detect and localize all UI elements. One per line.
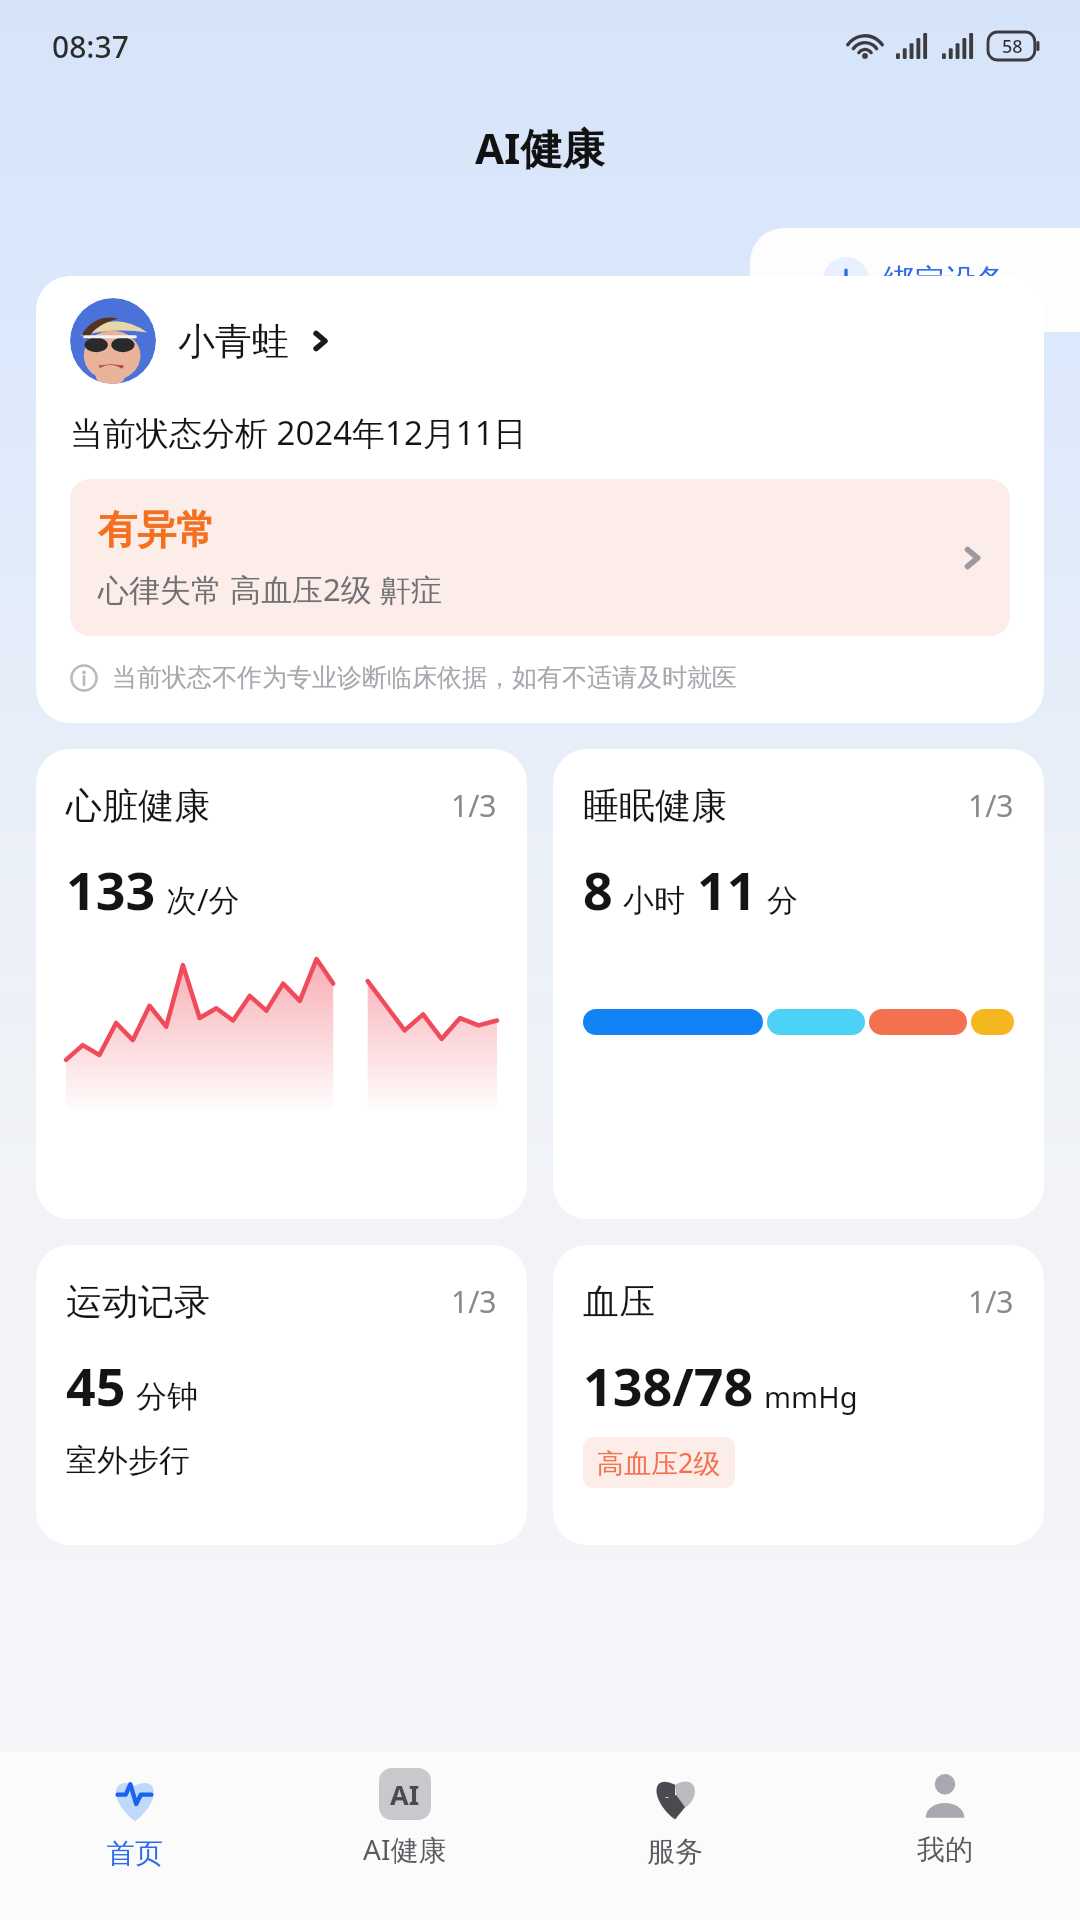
- staticText: 小青蛙: [178, 318, 289, 365]
- staticText: 小时: [623, 881, 685, 920]
- button[interactable]: 心脏健康: [36, 749, 527, 1219]
- button[interactable]: 有异常: [70, 479, 1010, 636]
- staticText: 58: [1002, 34, 1023, 59]
- staticText: 我的: [917, 1832, 973, 1867]
- button[interactable]: 血压: [553, 1245, 1044, 1545]
- staticText: 室外步行: [66, 1441, 190, 1480]
- staticText: 1/3: [968, 1281, 1014, 1322]
- staticText: 8: [583, 854, 613, 925]
- staticText: 心脏健康: [66, 783, 451, 828]
- button[interactable]: 小青蛙: [70, 298, 329, 384]
- staticText: 138/78: [583, 1350, 754, 1421]
- staticText: 1/3: [968, 785, 1014, 826]
- staticText: 08:37: [52, 26, 129, 67]
- staticText: 次/分: [166, 878, 240, 920]
- staticText: 当前状态分析 2024年12月11日: [70, 410, 527, 455]
- staticText: 133: [66, 854, 156, 925]
- staticText: 心律失常 高血压2级 鼾症: [98, 568, 442, 610]
- button[interactable]: 服务: [540, 1752, 810, 1920]
- staticText: 1/3: [451, 785, 497, 826]
- staticText: 血压: [583, 1279, 968, 1324]
- staticText: AI: [390, 1776, 420, 1813]
- staticText: 服务: [647, 1834, 703, 1869]
- staticText: 45: [66, 1350, 126, 1421]
- staticText: 分: [767, 881, 798, 920]
- staticText: 当前状态不作为专业诊断临床依据，如有不适请及时就医: [112, 662, 737, 693]
- staticText: AI健康: [363, 1830, 447, 1868]
- button[interactable]: 运动记录: [36, 1245, 527, 1545]
- staticText: 有异常: [98, 505, 215, 554]
- staticText: 高血压2级: [597, 1444, 721, 1481]
- button[interactable]: AI: [270, 1752, 540, 1920]
- staticText: 绑定设备: [883, 261, 1007, 300]
- staticText: 运动记录: [66, 1279, 451, 1324]
- staticText: 11: [697, 854, 757, 925]
- button[interactable]: 首页: [0, 1752, 270, 1920]
- staticText: AI健康: [475, 119, 605, 176]
- button[interactable]: 睡眠健康: [553, 749, 1044, 1219]
- staticText: 睡眠健康: [583, 783, 968, 828]
- button[interactable]: 绑定设备: [750, 228, 1080, 332]
- button[interactable]: 我的: [810, 1752, 1080, 1920]
- staticText: mmHg: [764, 1377, 858, 1416]
- staticText: 1/3: [451, 1281, 497, 1322]
- staticText: 首页: [107, 1836, 163, 1871]
- staticText: 分钟: [136, 1377, 198, 1416]
